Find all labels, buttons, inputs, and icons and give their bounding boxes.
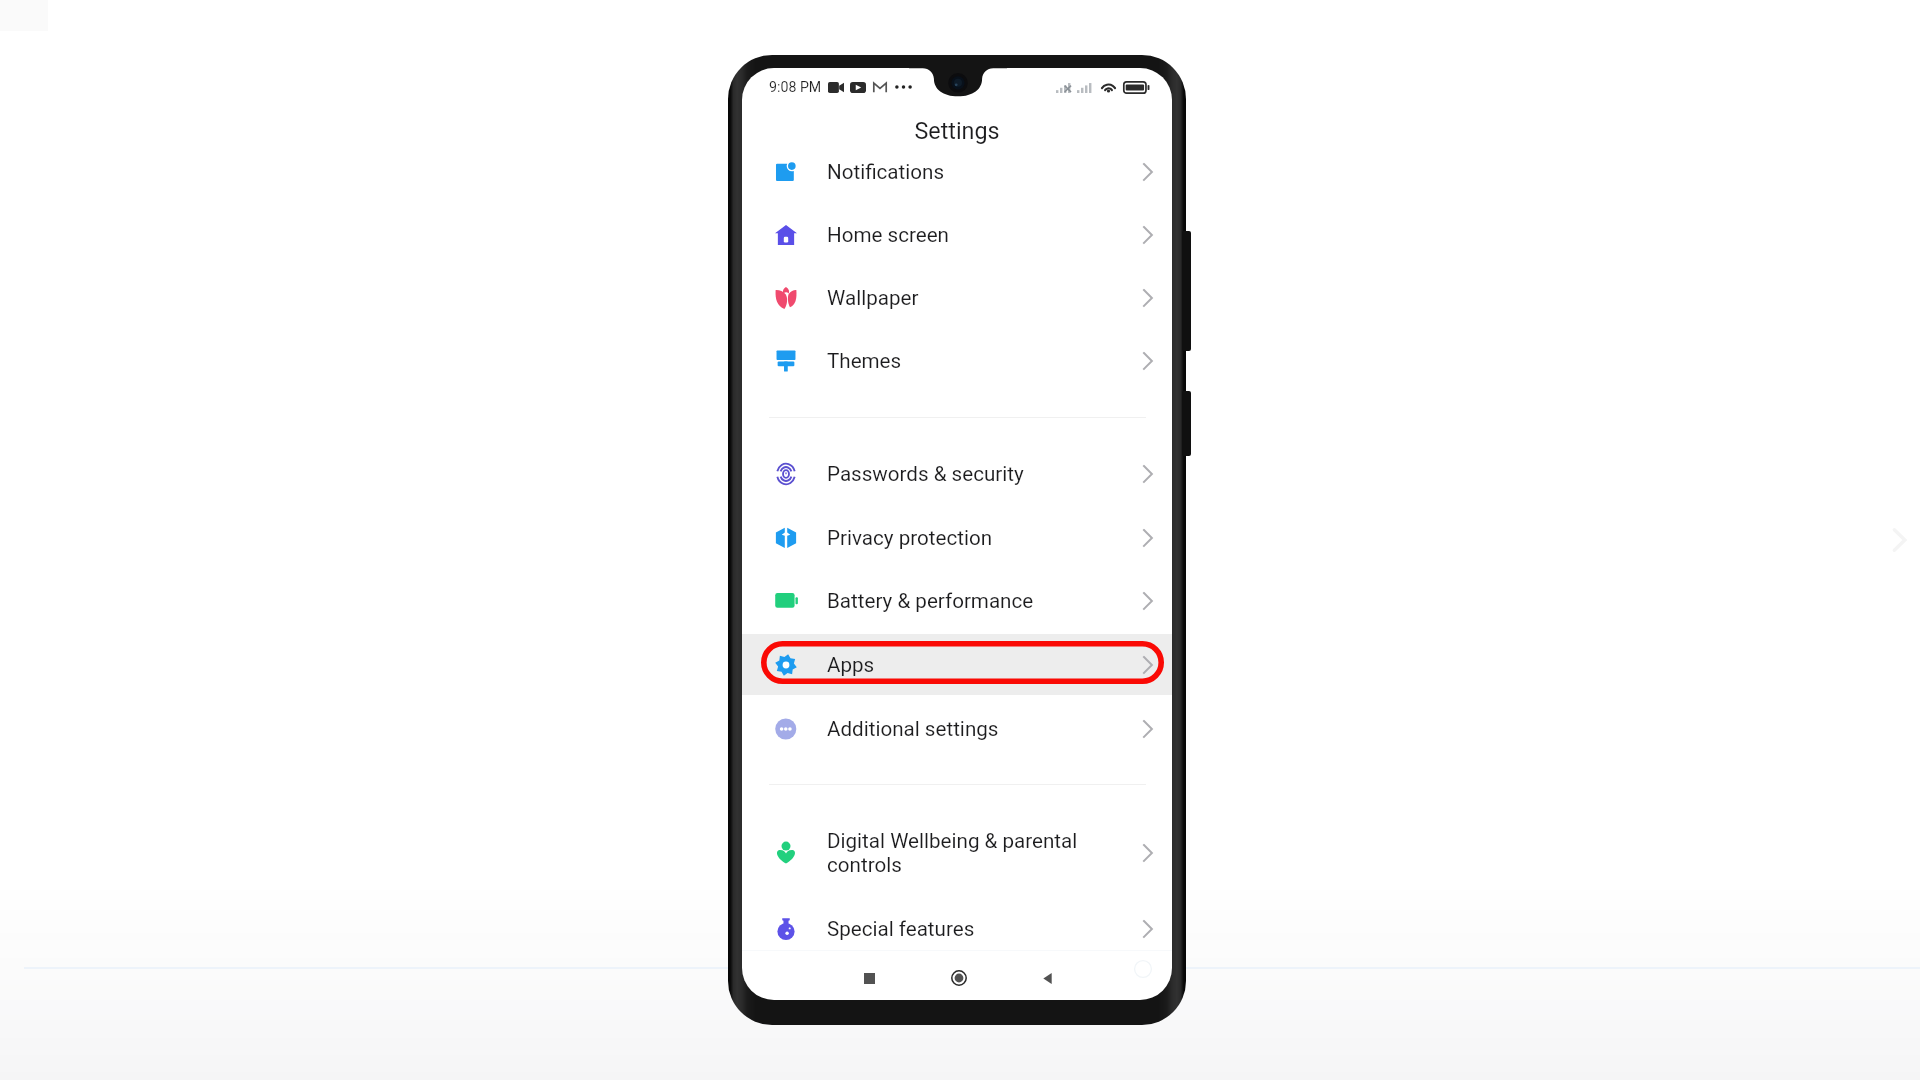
- staticText: Battery & performance: [827, 589, 1034, 613]
- button[interactable]: Recents: [857, 966, 881, 990]
- button[interactable]: Special features: [742, 898, 1172, 960]
- button[interactable]: Back: [1035, 966, 1059, 990]
- staticText: Digital Wellbeing & parental controls: [827, 829, 1078, 877]
- staticText: Themes: [827, 349, 902, 373]
- staticText: Special features: [827, 917, 975, 941]
- button[interactable]: Additional settings: [742, 698, 1172, 760]
- staticText: Apps: [827, 653, 875, 677]
- staticText: Privacy protection: [827, 526, 993, 550]
- staticText: Home screen: [827, 223, 949, 247]
- button[interactable]: Themes: [742, 330, 1172, 392]
- staticText: Settings: [914, 117, 1000, 144]
- staticText: Notifications: [827, 160, 945, 184]
- button[interactable]: Battery & performance: [742, 570, 1172, 632]
- button[interactable]: Home: [947, 966, 971, 990]
- button[interactable]: Digital Wellbeing & parental controls: [742, 822, 1172, 884]
- button[interactable]: Passwords & security: [742, 443, 1172, 505]
- button[interactable]: Apps: [742, 634, 1172, 695]
- staticText: 9:08 PM: [769, 79, 822, 96]
- staticText: Wallpaper: [827, 286, 919, 310]
- button[interactable]: Notifications: [742, 141, 1172, 203]
- staticText: Passwords & security: [827, 462, 1024, 486]
- staticText: Additional settings: [827, 717, 999, 741]
- button[interactable]: Privacy protection: [742, 507, 1172, 569]
- button[interactable]: Home screen: [742, 204, 1172, 266]
- button[interactable]: Wallpaper: [742, 267, 1172, 329]
